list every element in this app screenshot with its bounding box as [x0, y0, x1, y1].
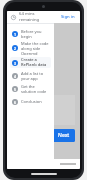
staticText: Get the solution code	[21, 84, 49, 94]
button[interactable]: 2	[10, 41, 51, 55]
button[interactable]: 6	[10, 96, 51, 107]
button[interactable]: 5	[10, 83, 51, 94]
button[interactable]: 4	[10, 70, 51, 81]
staticText: 5	[14, 87, 16, 92]
staticText: Add a list to your app	[21, 71, 49, 81]
button[interactable]: 1	[10, 28, 51, 39]
staticText: Before you begin	[21, 29, 49, 39]
staticText: Next	[58, 132, 70, 139]
staticText: Create a RePlanb data class	[21, 57, 49, 68]
button[interactable]: Sign in	[60, 13, 76, 21]
staticText: Sign in	[61, 14, 75, 20]
staticText: Make the code along side Openmd	[21, 41, 49, 55]
staticText: 64 mins remaining	[19, 11, 54, 23]
staticText: 6	[14, 100, 16, 105]
button[interactable]: Next	[53, 129, 75, 142]
staticText: n data	[10, 28, 37, 40]
button[interactable]: 3	[10, 57, 51, 68]
staticText: Conclusion	[21, 99, 42, 104]
button[interactable]: 64 mins remaining	[7, 11, 54, 23]
staticText: 1	[14, 32, 16, 37]
staticText: 3	[14, 61, 16, 66]
staticText: 2	[14, 46, 16, 51]
staticText: 4	[14, 74, 16, 79]
